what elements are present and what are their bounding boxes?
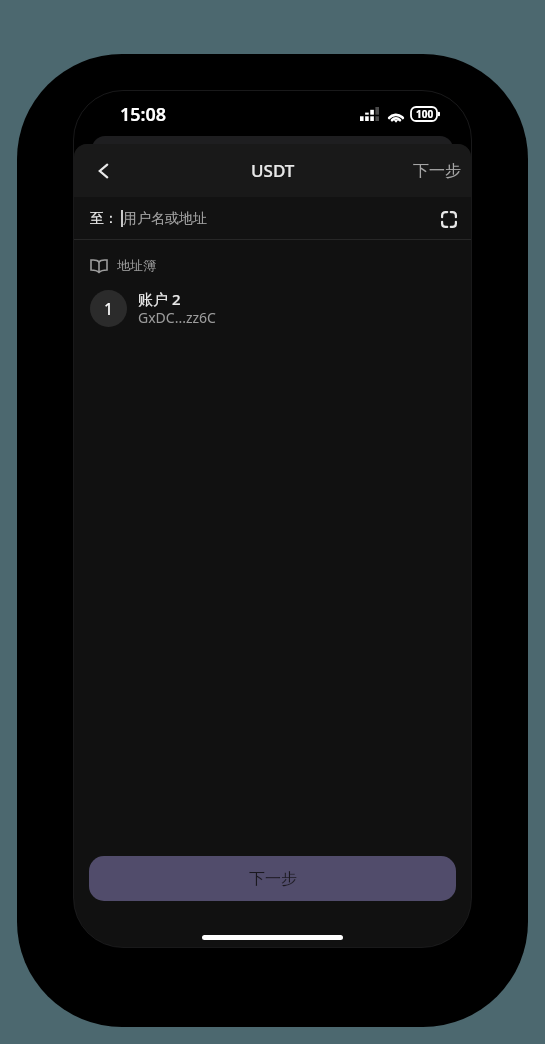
button[interactable]: 1 — [74, 282, 471, 334]
staticText: 100 — [416, 107, 434, 121]
button[interactable]: 地址簿 — [74, 248, 471, 282]
staticText: 下一步 — [413, 161, 461, 181]
staticText: 1 — [104, 298, 114, 320]
staticText: 地址簿 — [117, 257, 156, 273]
staticText: 账户 2 — [138, 289, 181, 309]
staticText: 下一步 — [249, 869, 297, 889]
button[interactable]: 至： — [74, 197, 471, 240]
button[interactable]: 下一步 — [399, 151, 471, 191]
staticText: USDT — [251, 159, 295, 182]
staticText: 15:08 — [120, 102, 167, 127]
button[interactable]: Back — [79, 147, 127, 195]
button[interactable]: 下一步 — [89, 856, 456, 901]
button[interactable]: Scan QR code — [433, 203, 465, 235]
staticText: 用户名或地址 — [123, 210, 207, 228]
staticText: 至： — [90, 210, 118, 228]
staticText: GxDC...zz6C — [138, 308, 216, 327]
